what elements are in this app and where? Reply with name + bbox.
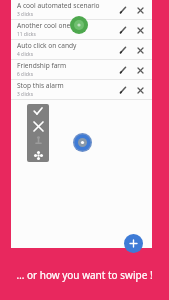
- button[interactable]: Edit: [115, 62, 131, 78]
- staticText: Friendship farm: [17, 61, 67, 70]
- button[interactable]: Cancel: [31, 119, 45, 133]
- button[interactable]: Delete: [132, 2, 148, 18]
- button[interactable]: Delete: [132, 42, 148, 58]
- button[interactable]: Stop this alarm: [11, 80, 152, 99]
- staticText: 4 clicks: [17, 51, 33, 58]
- button[interactable]: Delete: [132, 62, 148, 78]
- button[interactable]: Friendship farm: [11, 60, 152, 79]
- button[interactable]: Pin: [31, 133, 45, 147]
- button[interactable]: Another cool one: [11, 20, 152, 39]
- button[interactable]: Edit: [115, 82, 131, 98]
- staticText: 11 clicks: [17, 31, 36, 38]
- staticText: 6 clicks: [17, 71, 33, 78]
- button[interactable]: Edit: [115, 2, 131, 18]
- staticText: Another cool one: [17, 21, 71, 30]
- button[interactable]: Edit: [115, 22, 131, 38]
- button[interactable]: Move: [31, 148, 45, 162]
- button[interactable]: Auto click on candy: [11, 40, 152, 59]
- button[interactable]: Delete: [132, 22, 148, 38]
- staticText: 3 clicks: [17, 91, 33, 98]
- staticText: Auto click on candy: [17, 41, 77, 50]
- button[interactable]: Confirm: [31, 104, 45, 118]
- staticText: … or how you want to swipe !: [16, 268, 153, 282]
- button[interactable]: A cool automated scenario: [11, 0, 152, 19]
- staticText: 3 clicks: [17, 11, 33, 18]
- button[interactable]: Delete: [132, 82, 148, 98]
- staticText: A cool automated scenario: [17, 1, 100, 10]
- button[interactable]: Edit: [115, 42, 131, 58]
- button[interactable]: Add: [124, 234, 143, 253]
- staticText: Stop this alarm: [17, 81, 64, 90]
